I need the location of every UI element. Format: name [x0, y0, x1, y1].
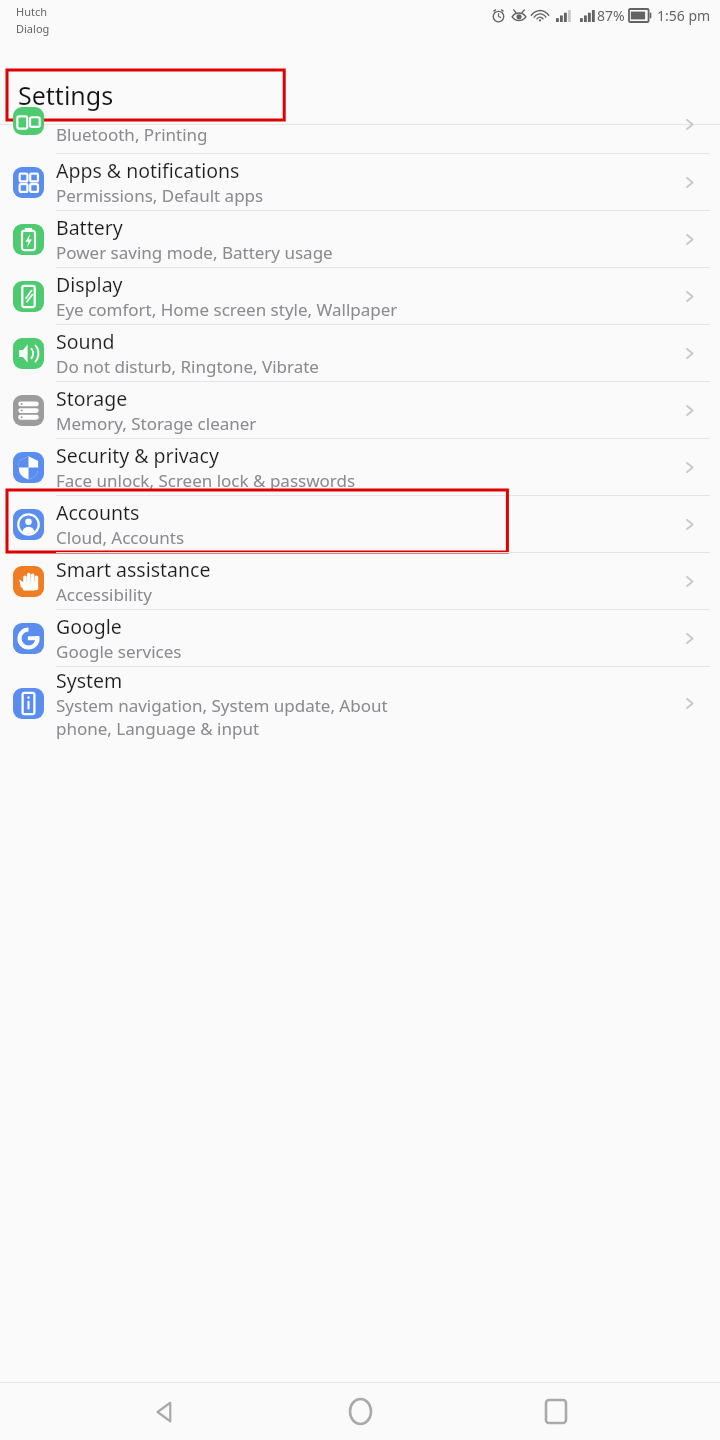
staticText: System navigation, System update, About — [56, 694, 388, 717]
button[interactable]: Home — [329, 1383, 391, 1440]
staticText: Bluetooth, Printing — [56, 123, 208, 146]
staticText: phone, Language & input — [56, 717, 260, 740]
staticText: Storage — [56, 385, 128, 412]
button[interactable]: Display — [0, 268, 720, 324]
button[interactable]: Settings — [0, 69, 720, 121]
staticText: Display — [56, 271, 123, 298]
button[interactable]: Battery — [0, 211, 720, 267]
staticText: Settings — [18, 78, 114, 112]
button[interactable]: Accounts — [0, 496, 720, 552]
staticText: Memory, Storage cleaner — [56, 412, 257, 435]
staticText: Face unlock, Screen lock & passwords — [56, 469, 356, 492]
staticText: 87% — [597, 6, 625, 25]
button[interactable]: Google — [0, 610, 720, 666]
button[interactable]: System — [0, 667, 720, 740]
button[interactable]: Bluetooth, Printing — [0, 125, 720, 153]
staticText: Smart assistance — [56, 556, 211, 583]
staticText: Google — [56, 613, 122, 640]
staticText: Eye comfort, Home screen style, Wallpape… — [56, 298, 398, 321]
staticText: Do not disturb, Ringtone, Vibrate — [56, 355, 319, 378]
staticText: Sound — [56, 328, 115, 355]
staticText: Battery — [56, 214, 123, 241]
button[interactable]: Sound — [0, 325, 720, 381]
staticText: System — [56, 667, 123, 694]
staticText: Accessibility — [56, 583, 152, 606]
staticText: Accounts — [56, 499, 140, 526]
staticText: 1:56 pm — [657, 6, 711, 25]
staticText: Google services — [56, 640, 182, 663]
button[interactable]: Storage — [0, 382, 720, 438]
staticText: Cloud, Accounts — [56, 526, 185, 549]
staticText: Apps & notifications — [56, 157, 240, 184]
button[interactable]: Security & privacy — [0, 439, 720, 495]
staticText: Dialog — [16, 21, 50, 36]
staticText: Hutch — [16, 4, 47, 19]
staticText: Permissions, Default apps — [56, 184, 264, 207]
staticText: Power saving mode, Battery usage — [56, 241, 333, 264]
button[interactable]: Back — [134, 1383, 196, 1440]
button[interactable]: Apps & notifications — [0, 154, 720, 210]
staticText: Security & privacy — [56, 442, 219, 469]
button[interactable]: Recent apps — [525, 1383, 587, 1440]
button[interactable]: Smart assistance — [0, 553, 720, 609]
